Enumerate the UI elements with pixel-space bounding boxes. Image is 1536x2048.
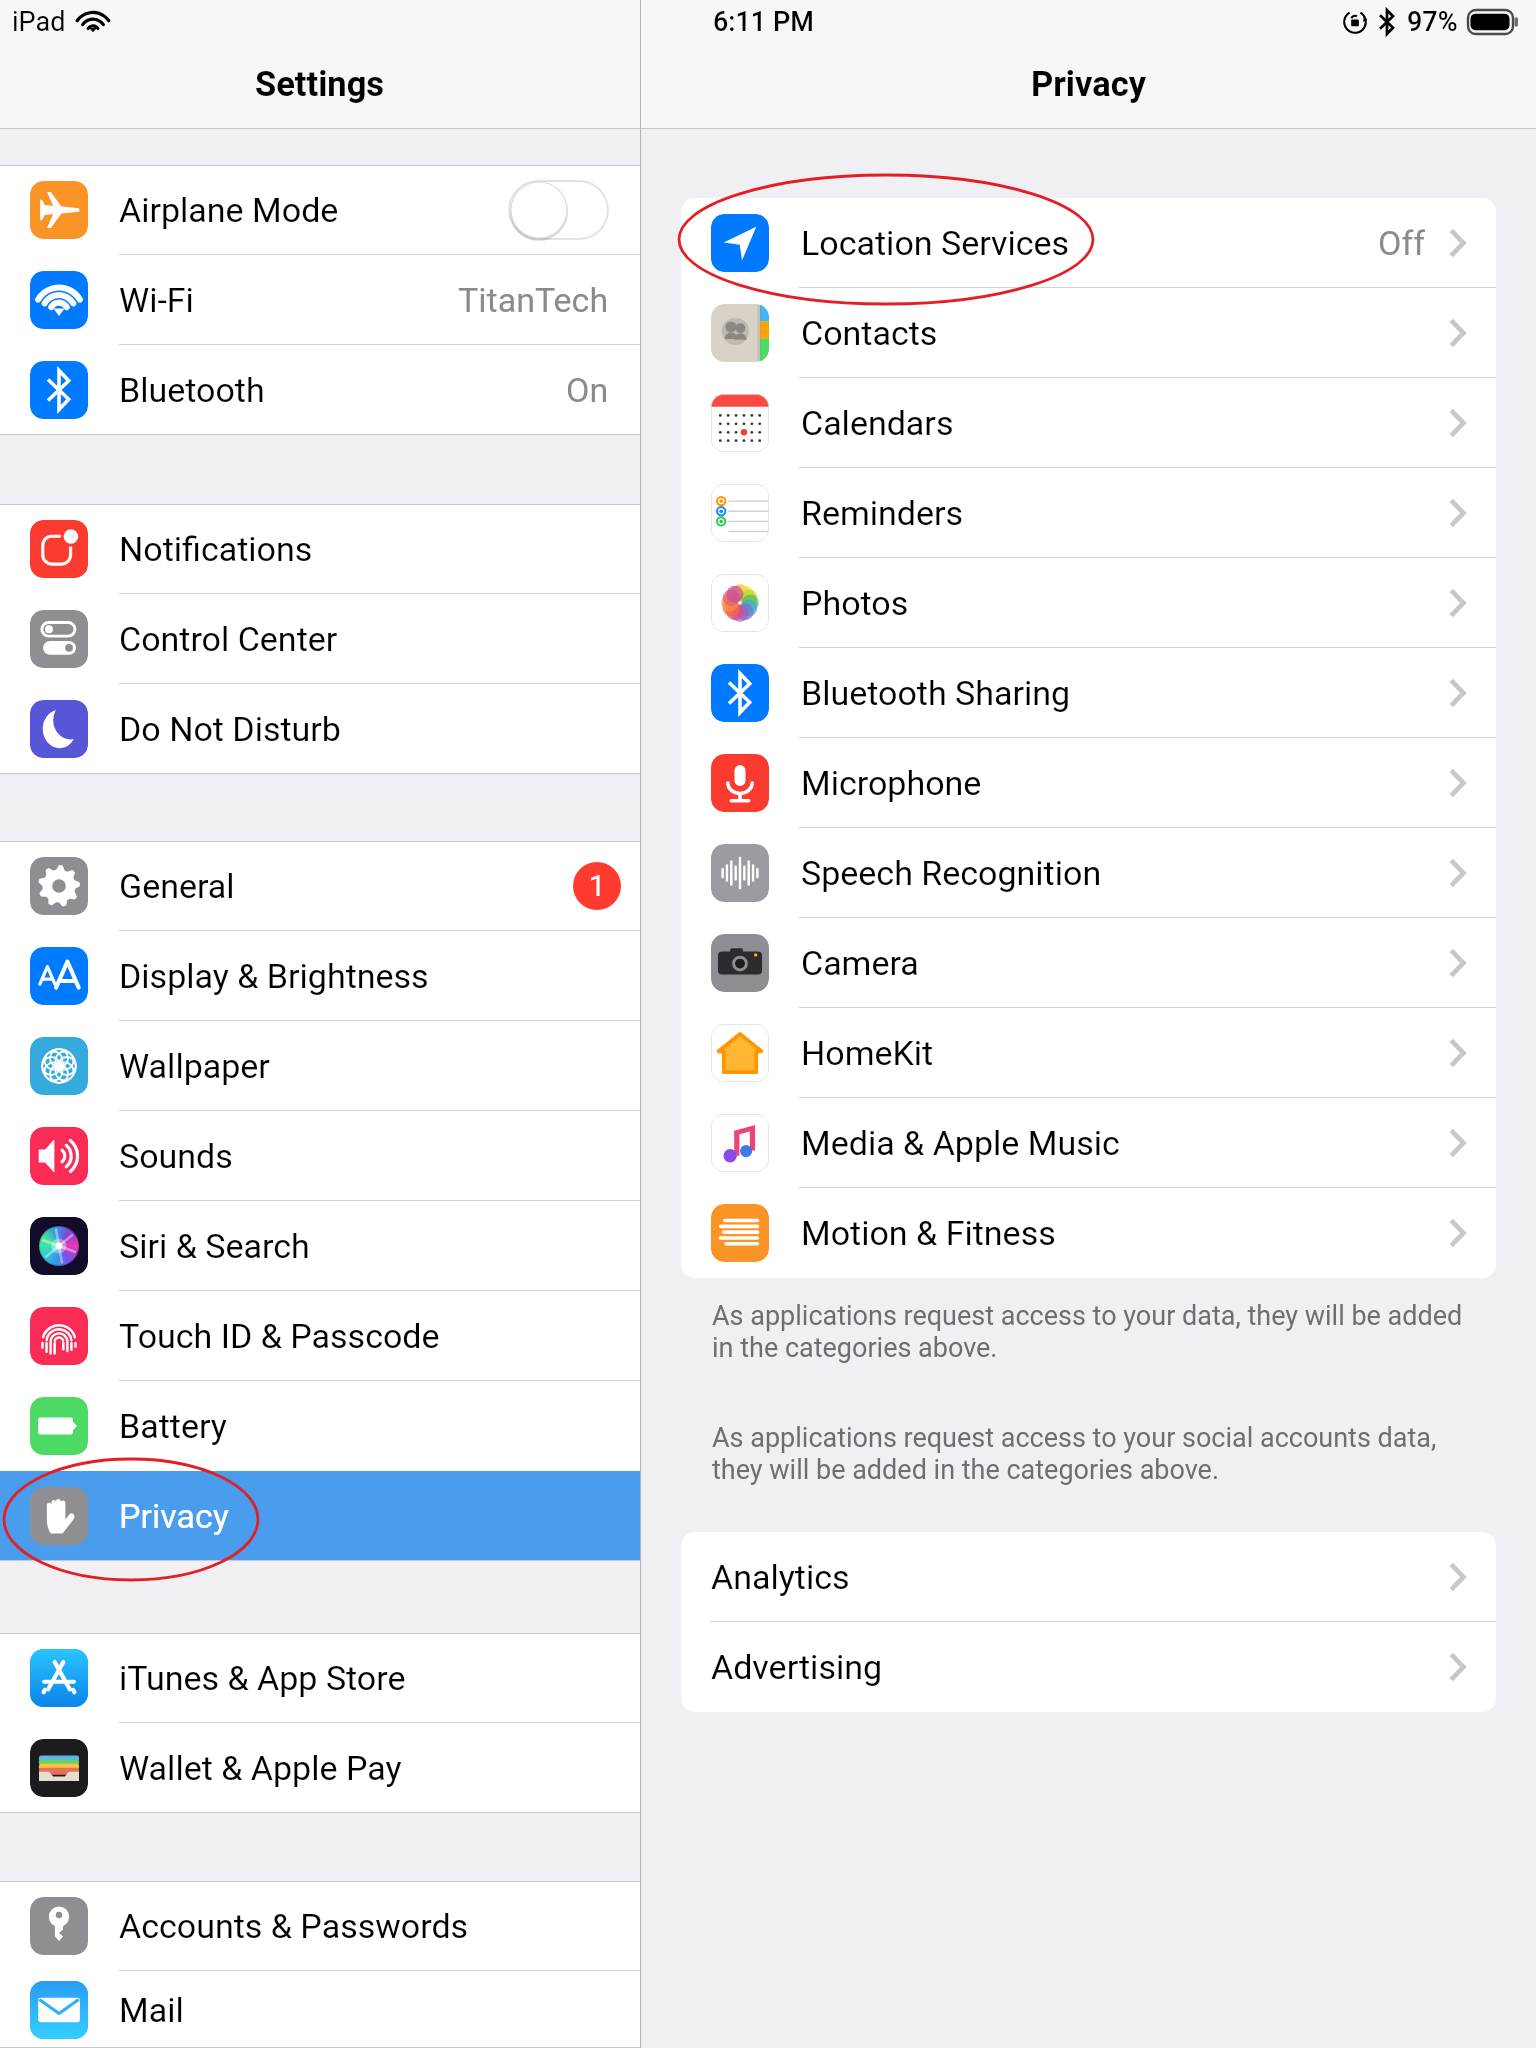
button[interactable]: Camera [681, 918, 1496, 1008]
button[interactable]: Wallpaper [0, 1021, 640, 1111]
staticText: Advertising [711, 1647, 883, 1687]
staticText: Contacts [801, 313, 938, 353]
button[interactable]: Reminders [681, 468, 1496, 558]
staticText: Camera [801, 943, 919, 983]
staticText: Analytics [711, 1557, 850, 1597]
button[interactable]: Privacy [0, 1471, 640, 1561]
button[interactable]: Mail [0, 1971, 640, 2048]
staticText: Bluetooth Sharing [801, 673, 1071, 713]
staticText: Mail [119, 1990, 184, 2030]
staticText: On [566, 370, 609, 410]
staticText: Reminders [801, 493, 964, 533]
button[interactable]: Control Center [0, 594, 640, 684]
button[interactable]: iTunes & App Store [0, 1633, 640, 1723]
staticText: Notifications [119, 529, 313, 569]
staticText: Media & Apple Music [801, 1123, 1120, 1163]
button[interactable]: Siri & Search [0, 1201, 640, 1291]
button[interactable]: HomeKit [681, 1008, 1496, 1098]
staticText: 1 [589, 869, 606, 903]
staticText: Motion & Fitness [801, 1213, 1056, 1253]
button[interactable]: Display & Brightness [0, 931, 640, 1021]
staticText: Microphone [801, 763, 982, 803]
button[interactable]: Do Not Disturb [0, 684, 640, 774]
button[interactable]: Calendars [681, 378, 1496, 468]
button[interactable]: Photos [681, 558, 1496, 648]
button[interactable]: Sounds [0, 1111, 640, 1201]
button[interactable]: Notifications [0, 504, 640, 594]
staticText: Off [1378, 223, 1426, 263]
button[interactable]: Speech Recognition [681, 828, 1496, 918]
staticText: Airplane Mode [119, 190, 339, 230]
staticText: Accounts & Passwords [119, 1906, 469, 1946]
staticText: HomeKit [801, 1033, 934, 1073]
button[interactable]: Accounts & Passwords [0, 1881, 640, 1971]
button[interactable]: Microphone [681, 738, 1496, 828]
staticText: Bluetooth [119, 370, 265, 410]
button[interactable]: Advertising [681, 1622, 1496, 1712]
staticText: Wi-Fi [119, 280, 194, 320]
staticText: As applications request access to your d… [712, 1300, 1476, 1364]
staticText: Wallpaper [119, 1046, 270, 1086]
staticText: TitanTech [458, 280, 609, 320]
button[interactable]: Wi-Fi [0, 255, 640, 345]
staticText: General [119, 866, 235, 906]
staticText: Location Services [801, 223, 1070, 263]
staticText: Privacy [119, 1496, 229, 1536]
staticText: Touch ID & Passcode [119, 1316, 440, 1356]
button[interactable]: Airplane Mode toggle [508, 180, 609, 240]
staticText: iPad [12, 6, 66, 38]
button[interactable]: Airplane Mode [0, 165, 640, 255]
button[interactable]: Analytics [681, 1532, 1496, 1622]
button[interactable]: Touch ID & Passcode [0, 1291, 640, 1381]
button[interactable]: Location Services [681, 198, 1496, 288]
staticText: iTunes & App Store [119, 1658, 406, 1698]
staticText: Control Center [119, 619, 338, 659]
staticText: Display & Brightness [119, 956, 429, 996]
staticText: Wallet & Apple Pay [119, 1748, 402, 1788]
button[interactable]: Battery [0, 1381, 640, 1471]
staticText: Speech Recognition [801, 853, 1102, 893]
button[interactable]: General [0, 841, 640, 931]
staticText: Calendars [801, 403, 954, 443]
button[interactable]: Contacts [681, 288, 1496, 378]
button[interactable]: Wallet & Apple Pay [0, 1723, 640, 1813]
staticText: 6:11 PM [713, 6, 814, 38]
staticText: As applications request access to your s… [712, 1422, 1476, 1486]
staticText: Settings [255, 64, 385, 104]
button[interactable]: Motion & Fitness [681, 1188, 1496, 1278]
staticText: Battery [119, 1406, 227, 1446]
staticText: Privacy [1031, 64, 1147, 104]
staticText: Siri & Search [119, 1226, 310, 1266]
staticText: 97% [1407, 6, 1458, 38]
staticText: Sounds [119, 1136, 233, 1176]
button[interactable]: Bluetooth Sharing [681, 648, 1496, 738]
staticText: Photos [801, 583, 909, 623]
staticText: Do Not Disturb [119, 709, 341, 749]
button[interactable]: Media & Apple Music [681, 1098, 1496, 1188]
button[interactable]: Bluetooth [0, 345, 640, 435]
